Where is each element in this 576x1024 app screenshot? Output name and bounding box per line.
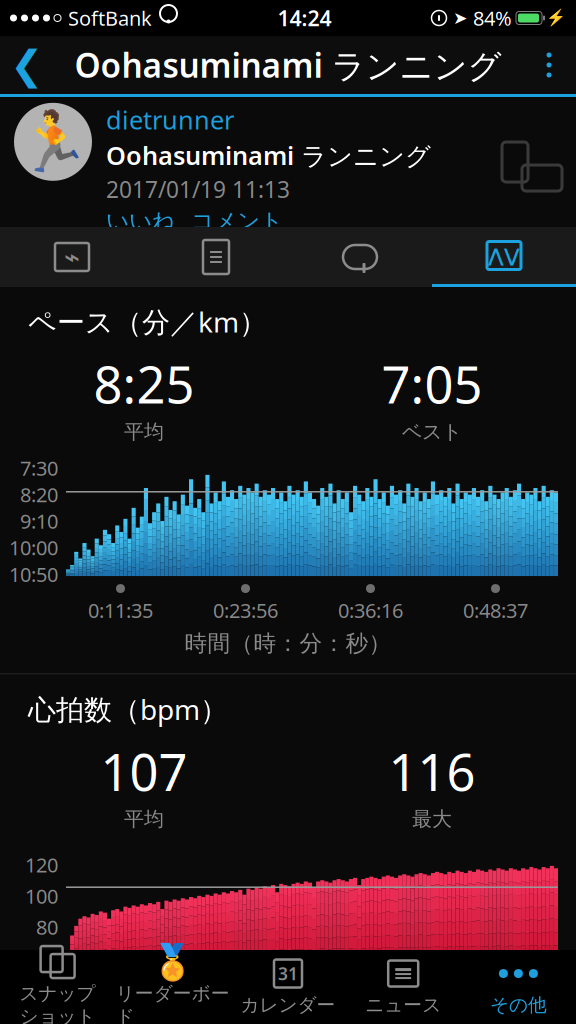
button[interactable]: スナップショット	[0, 951, 115, 1023]
button[interactable]: 31	[230, 951, 346, 1023]
staticText: ⋀⋁	[488, 245, 520, 266]
staticText: スナップショット	[20, 982, 96, 1024]
staticText: ペース（分／km）	[28, 303, 267, 340]
staticText: Oohasuminami ランニング	[106, 138, 431, 172]
staticText: 10:00	[9, 534, 58, 561]
staticText: ニュース	[365, 993, 441, 1016]
staticText: いいね	[106, 207, 175, 235]
staticText: 7:30	[20, 455, 58, 481]
button[interactable]: Charts	[432, 227, 576, 287]
button[interactable]: その他	[461, 951, 576, 1023]
staticText: 0:11:35	[88, 597, 153, 624]
staticText: ⌁	[64, 242, 80, 272]
staticText: 2017/01/19 11:13	[106, 174, 290, 204]
staticText: 7:05	[381, 350, 482, 417]
staticText: 8:20	[20, 481, 58, 508]
button[interactable]: Splits	[144, 227, 288, 287]
staticText: 0:48:37	[463, 597, 528, 624]
staticText: 80	[36, 914, 58, 940]
staticText: その他	[490, 993, 547, 1016]
staticText: 10:50	[9, 561, 58, 587]
staticText: 心拍数（bpm）	[28, 690, 228, 728]
staticText: 100	[25, 883, 58, 909]
button[interactable]: Back	[0, 36, 54, 94]
staticText: 🏅	[151, 942, 194, 982]
staticText: 平均	[124, 419, 164, 444]
staticText: dietrunner	[106, 103, 234, 136]
staticText: SoftBank	[68, 5, 152, 31]
staticText: ❮	[10, 42, 44, 88]
staticText: 0:36:16	[338, 597, 403, 624]
staticText: 60	[36, 945, 58, 971]
staticText: コメント	[191, 207, 283, 235]
staticText: 最大	[412, 807, 452, 831]
staticText: ベスト	[402, 419, 462, 444]
staticText: 120	[25, 851, 58, 878]
staticText: Oohasuminami ランニング	[74, 43, 501, 87]
staticText: リーダーボード	[116, 982, 230, 1024]
staticText: ⚡	[546, 9, 566, 27]
button[interactable]: More options	[522, 36, 576, 94]
button[interactable]: dietrunner	[106, 103, 234, 136]
staticText: 84%	[473, 5, 512, 31]
staticText: 0:23:56	[213, 597, 278, 624]
button[interactable]: Map	[0, 227, 144, 287]
staticText: 時間（時：分：秒）	[184, 630, 391, 657]
staticText: 平均	[124, 807, 164, 831]
button[interactable]: コメント	[191, 207, 283, 235]
button[interactable]: Laps	[288, 227, 432, 287]
staticText: 116	[388, 738, 475, 805]
button[interactable]: いいね	[106, 207, 175, 235]
staticText: ➤	[453, 8, 468, 28]
staticText: 31	[278, 962, 298, 985]
staticText: 14:24	[277, 4, 331, 32]
staticText: 107	[100, 738, 187, 805]
button[interactable]: 🏅	[115, 951, 230, 1023]
staticText: 8:25	[93, 350, 194, 417]
button[interactable]: ニュース	[346, 951, 461, 1023]
staticText: 🏃	[16, 108, 89, 175]
staticText: 9:10	[20, 508, 58, 534]
staticText: カレンダー	[240, 993, 335, 1016]
